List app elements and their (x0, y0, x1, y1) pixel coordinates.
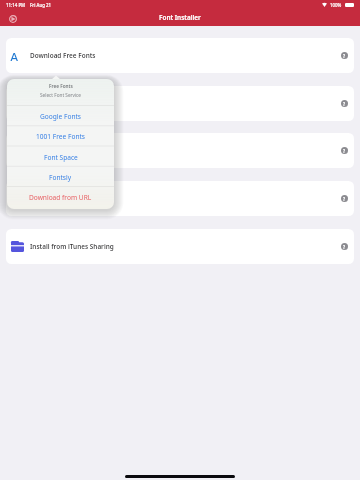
staticText: Fontsly (49, 173, 72, 182)
staticText: Aa (10, 48, 25, 61)
staticText: ? (343, 196, 346, 202)
staticText: Install from iTunes Sharing (30, 242, 114, 251)
staticText: ? (343, 148, 346, 154)
staticText: ? (343, 244, 346, 250)
staticText: Font Settings (30, 194, 72, 203)
staticText: 1001 Free Fonts (36, 132, 85, 141)
staticText: 11:14 PM (6, 2, 26, 8)
staticText: Download from URL (29, 193, 92, 202)
staticText: ? (343, 53, 346, 59)
button[interactable]: Aa (6, 38, 354, 73)
button[interactable]: Download from URL (7, 186, 114, 206)
button[interactable]: Install from iTunes Sharing (6, 229, 354, 264)
staticText: Fri Aug 21 (30, 2, 52, 8)
button[interactable]: Help (341, 147, 348, 154)
button[interactable]: Install Fonts (6, 86, 354, 121)
button[interactable]: Font Space (7, 146, 114, 166)
staticText: Free Fonts (49, 83, 73, 89)
button[interactable]: Help (341, 195, 348, 202)
button[interactable]: Help (341, 52, 348, 59)
button[interactable]: Help (341, 100, 348, 107)
button[interactable]: Font Settings (6, 181, 354, 216)
staticText: Font Space (44, 153, 78, 162)
staticText: Font Installer (159, 13, 201, 22)
staticText: Download Free Fonts (30, 51, 96, 60)
button[interactable]: Back (5, 11, 20, 26)
staticText: Install Fonts (30, 99, 69, 108)
button[interactable]: Fontsly (7, 166, 114, 186)
button[interactable]: Help (341, 243, 348, 250)
staticText: Google Fonts (40, 112, 81, 121)
button[interactable]: 1001 Free Fonts (7, 125, 114, 145)
staticText: Select Font Service (40, 92, 81, 98)
button[interactable]: Google Fonts (7, 105, 114, 125)
staticText: 100% (330, 2, 342, 8)
staticText: ? (343, 101, 346, 107)
button[interactable]: Manage Fonts (6, 133, 354, 168)
